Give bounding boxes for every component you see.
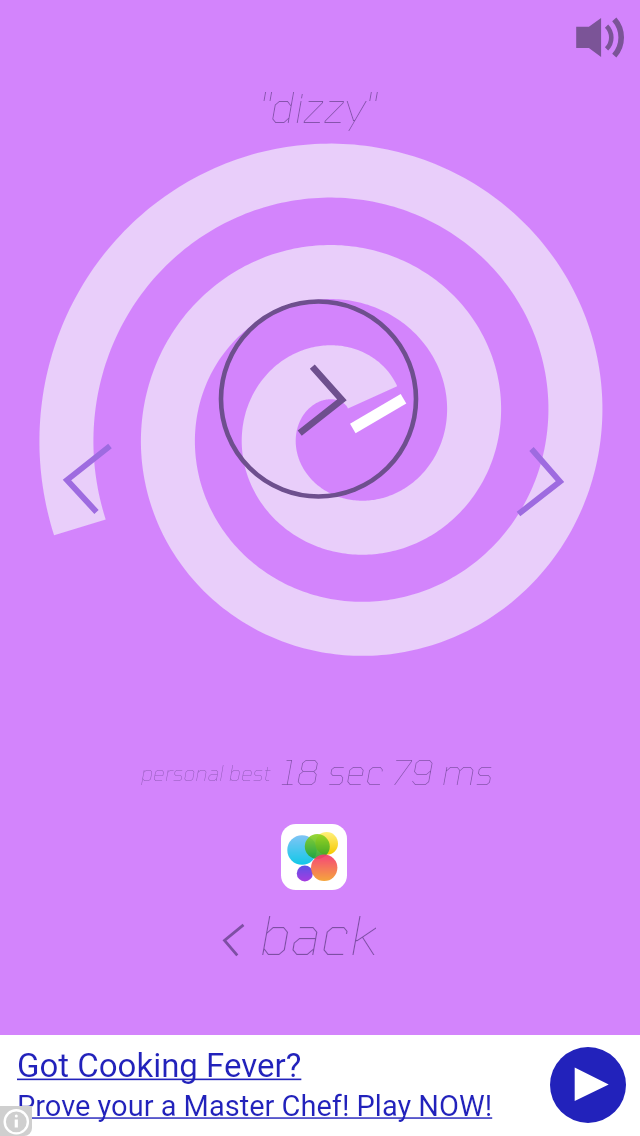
button[interactable]: Got Cooking Fever? (0, 1035, 640, 1136)
staticText: back (257, 901, 376, 963)
button[interactable]: Play (550, 1047, 626, 1123)
button[interactable]: back (214, 905, 386, 967)
button[interactable]: Ad info (0, 1106, 32, 1136)
button[interactable]: Previous (55, 435, 125, 525)
button[interactable]: Game Center (281, 824, 347, 890)
staticText: Got Cooking Fever? (17, 1046, 302, 1085)
staticText: 18 sec 79 ms (280, 750, 492, 792)
staticText: personal best (140, 760, 270, 785)
staticText: "dizzy" (258, 81, 374, 131)
button[interactable]: Sound (570, 10, 630, 66)
staticText: Prove your a Master Chef! Play NOW! (17, 1089, 493, 1123)
button[interactable]: "dizzy" (258, 81, 374, 131)
button[interactable]: Next (508, 435, 578, 525)
